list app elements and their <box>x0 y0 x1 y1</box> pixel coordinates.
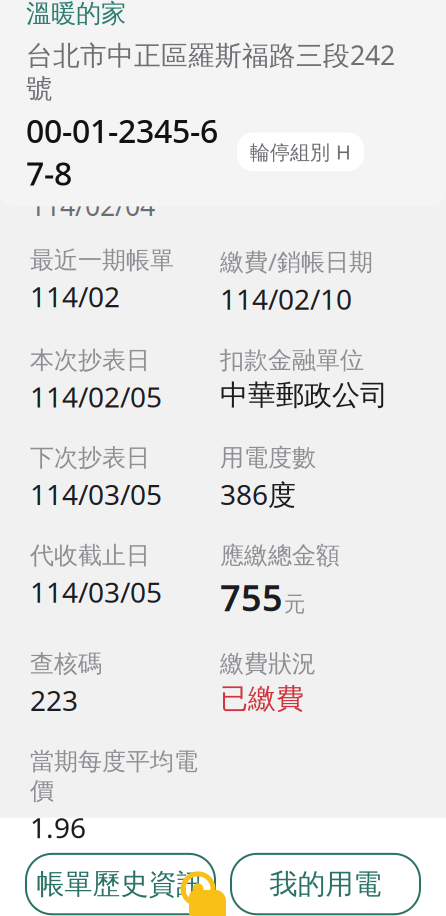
staticText: 代收截止日 <box>30 541 150 570</box>
staticText: 中華郵政公司 <box>220 378 388 412</box>
staticText: 下次抄表日 <box>30 443 150 473</box>
staticText: 本次抄表日 <box>30 345 150 375</box>
staticText: 最近一期帳單 <box>30 245 174 275</box>
staticText: 我的用電 <box>269 867 381 901</box>
staticText: 00-01-2345-67-8 <box>26 109 218 194</box>
staticText: 已繳費 <box>220 681 304 716</box>
staticText: 當期每度平均電價 <box>30 747 198 806</box>
staticText: 223 <box>30 681 78 719</box>
staticText: 扣款金融單位 <box>220 345 364 375</box>
staticText: 114/03/05 <box>30 573 162 610</box>
staticText: 755 <box>220 573 283 621</box>
staticText: 繳費/銷帳日期 <box>220 245 373 277</box>
staticText: 1.96 <box>30 809 86 846</box>
button[interactable]: 帳單歷史資訊 <box>26 854 215 914</box>
staticText: 386度 <box>220 476 296 513</box>
staticText: 114/02/05 <box>30 378 162 415</box>
staticText: 輪停組別 H <box>250 138 351 165</box>
staticText: 查核碼 <box>30 649 102 679</box>
staticText: 帳單歷史資訊 <box>36 867 204 901</box>
staticText: 114/03/05 <box>30 476 162 513</box>
staticText: 台北市中正區羅斯福路三段242號 <box>26 37 395 105</box>
staticText: 應繳總金額 <box>220 541 340 570</box>
button[interactable]: 我的用電 <box>231 854 420 914</box>
staticText: 114/02/10 <box>220 280 352 317</box>
staticText: 溫暖的家 <box>26 0 126 29</box>
staticText: 月份 <box>28 79 66 102</box>
staticText: 用電度數 <box>220 443 316 473</box>
staticText: 114/02 <box>30 278 120 315</box>
staticText: 元 <box>284 591 305 617</box>
staticText: 計費期間 114/01/03 ~ 114/02/04 <box>30 153 292 223</box>
staticText: 繳費狀況 <box>220 649 316 679</box>
